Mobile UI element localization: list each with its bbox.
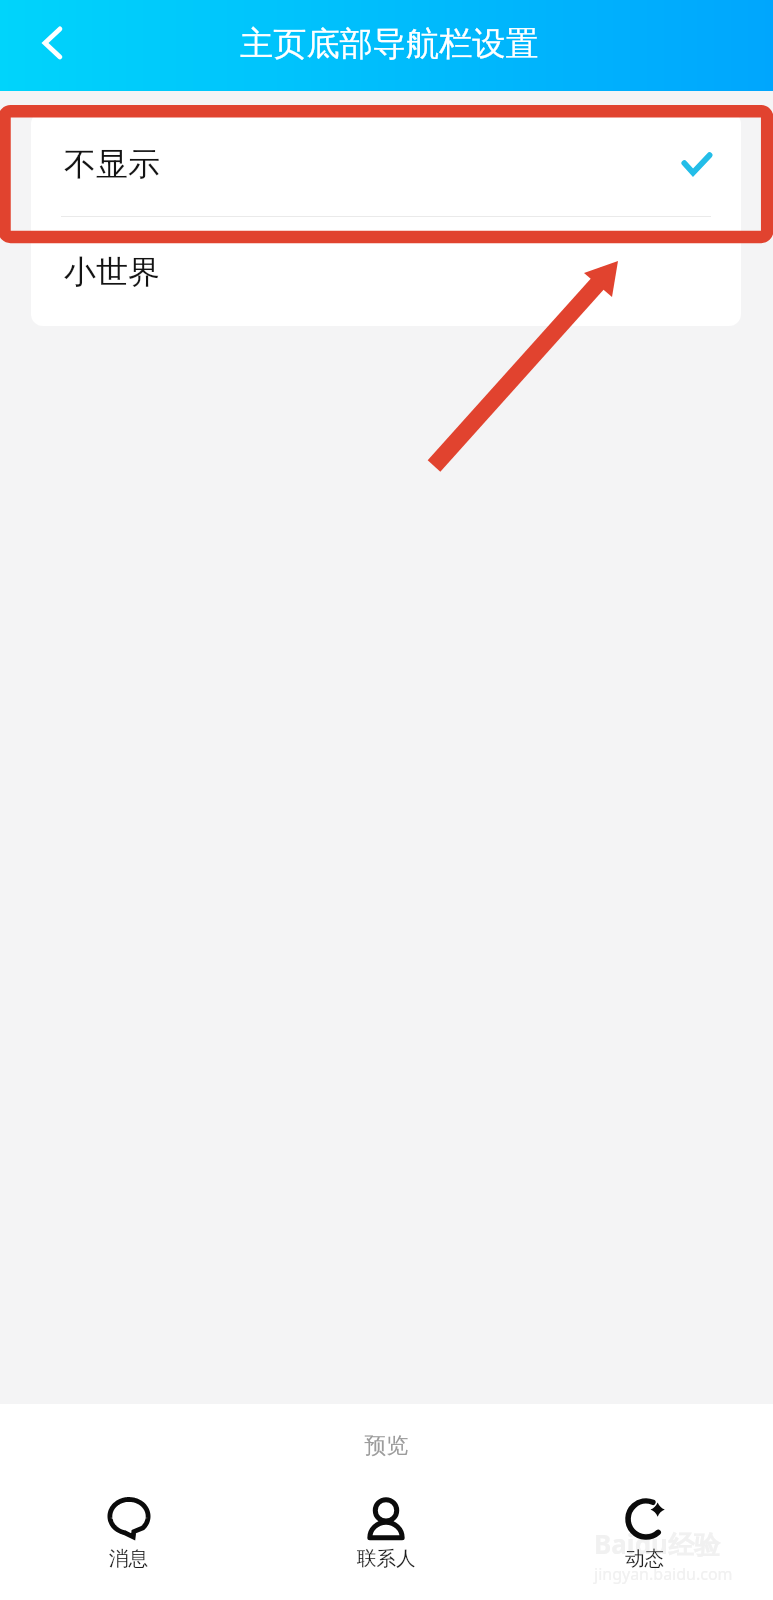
staticText: jingyan.baidu.com	[594, 1563, 733, 1585]
button[interactable]: Moments	[515, 1498, 773, 1571]
staticText: 动态	[625, 1546, 664, 1571]
staticText: 不显示	[64, 144, 160, 184]
button[interactable]: Back	[21, 13, 83, 75]
staticText: 小世界	[64, 252, 160, 292]
button[interactable]: 小世界	[31, 217, 741, 326]
staticText: 预览	[0, 1432, 773, 1460]
button[interactable]: Messages	[0, 1498, 257, 1571]
staticText: 联系人	[357, 1546, 416, 1571]
staticText: 消息	[109, 1546, 148, 1571]
button[interactable]: Contacts	[257, 1498, 515, 1571]
button[interactable]: 不显示	[31, 112, 741, 216]
staticText: 主页底部导航栏设置	[240, 23, 539, 65]
staticText: Baidu经验	[594, 1526, 720, 1562]
